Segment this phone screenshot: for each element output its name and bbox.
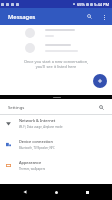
button[interactable]: Network & Internet: [0, 113, 112, 134]
staticText: Device connection: [19, 139, 53, 144]
staticText: Once you start a new conversation, you'l…: [0, 59, 112, 69]
staticText: Appearance: [19, 160, 42, 165]
button[interactable]: Appearance: [0, 155, 112, 176]
staticText: Wi-Fi, Data usage, Airplane mode: [19, 125, 63, 129]
button[interactable]: Search: [83, 10, 96, 23]
staticText: 65%: [77, 2, 85, 7]
button[interactable]: Back: [18, 185, 32, 199]
button[interactable]: Recent apps: [80, 185, 94, 199]
staticText: Bluetooth, TV/Speaker, NFC: [19, 146, 55, 150]
button[interactable]: More options: [99, 12, 109, 22]
staticText: Network & Internet: [19, 118, 56, 123]
button[interactable]: Device connection: [0, 134, 112, 155]
button[interactable]: Search settings: [95, 101, 107, 113]
staticText: 5:44 PM: [94, 2, 110, 7]
staticText: Themes, wallpapers: [19, 167, 46, 171]
staticText: Messages: [8, 13, 36, 21]
staticText: Settings: [8, 104, 25, 110]
button[interactable]: Start new conversation: [93, 74, 107, 88]
button[interactable]: Home: [49, 185, 63, 199]
